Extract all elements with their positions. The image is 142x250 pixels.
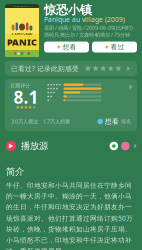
staticText: 斯特凡·奥比尔 / 文森特·帕塔尔 / 75分钟 xyxy=(44,31,130,38)
staticText: 1.7万人想看 xyxy=(43,118,70,125)
staticText: Panique au village (2009) xyxy=(44,15,125,24)
button[interactable]: 豆瓣评分 xyxy=(5,79,137,131)
staticText: 8.1 xyxy=(13,85,38,108)
staticText: PANIC xyxy=(7,36,37,48)
staticText: 播放源 xyxy=(21,140,48,152)
staticText: 排名 xyxy=(121,118,131,125)
staticText: 想看 xyxy=(62,43,76,51)
button[interactable]: 播放源 xyxy=(6,141,138,151)
staticText: A TOWN CALLED xyxy=(11,32,32,35)
button[interactable]: 看过 xyxy=(92,41,137,52)
staticText: 牛仔、印地安和小马共同居住在宁静乡间的一幢大房子中。糊涂的一天，他俩小马的生日，… xyxy=(6,181,133,250)
staticText: 喜剧 / 动画 / 冒险 / 2009-06-09(比利时) xyxy=(44,24,133,31)
staticText: 3.0万人看过 xyxy=(11,118,38,125)
staticText: 豆瓣评分 xyxy=(10,82,30,89)
staticText: 已看过? 记录此刻感受 xyxy=(11,64,79,73)
staticText: A FILM BY AUBIER & PATAR xyxy=(13,5,30,7)
staticText: 简介 xyxy=(6,166,24,177)
staticText: 惊恐小镇 xyxy=(44,3,92,17)
staticText: 想看 xyxy=(105,117,119,126)
button[interactable]: 想看 xyxy=(44,41,89,52)
button[interactable]: 已看过? 记录此刻感受 xyxy=(5,61,137,76)
staticText: 看过 xyxy=(110,43,124,51)
staticText: ····· xyxy=(19,47,24,50)
